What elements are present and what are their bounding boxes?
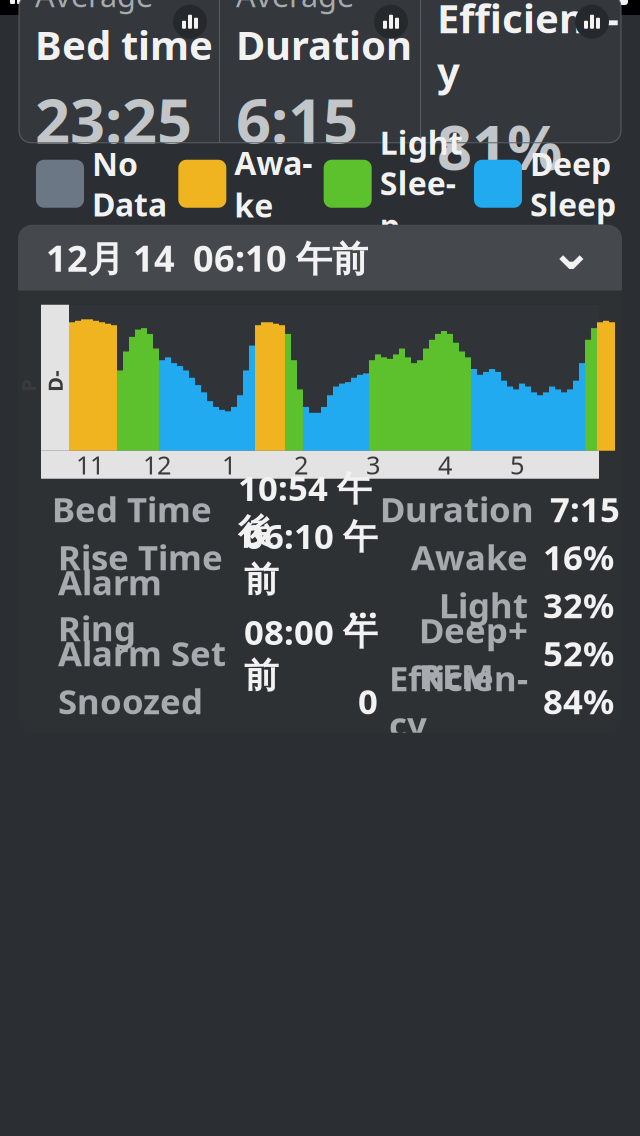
staticText: Bed Time (52, 486, 212, 532)
staticText: Snoozed (58, 678, 203, 724)
staticText: 99% (510, 0, 576, 17)
staticText: 32% (543, 582, 614, 628)
staticText: 3 (366, 448, 380, 481)
staticText: Duration (236, 18, 412, 71)
staticText: ➤ (446, 0, 467, 9)
staticText: 12月 14 06:10 午前 (46, 234, 368, 282)
staticText: Average (236, 0, 354, 16)
staticText: 16% (543, 534, 614, 580)
staticText: Light (439, 582, 528, 628)
staticText: SoftBank (50, 0, 194, 17)
staticText: 5 (510, 448, 524, 481)
staticText: 81% (437, 105, 562, 187)
staticText: Awake (411, 534, 528, 580)
staticText: Average (35, 0, 153, 16)
staticText: No (92, 142, 138, 185)
staticText: Efficiency (389, 655, 528, 747)
staticText: Efficiency (437, 0, 619, 97)
staticText: Bed time (35, 18, 213, 71)
staticText: Data (92, 183, 167, 225)
staticText: ⌄ (549, 220, 594, 281)
staticText: Sleep (380, 161, 456, 246)
staticText: Deep+REM (419, 607, 528, 699)
staticText: 2 (294, 448, 308, 481)
button[interactable]: Average (220, 0, 420, 143)
staticText: 08:00 午前 (244, 608, 378, 697)
staticText: Alarm Ring (58, 559, 162, 651)
staticText: ... (348, 582, 378, 628)
staticText: Rise Time (58, 534, 223, 580)
staticText: ✳ (231, 0, 253, 10)
staticText: 6:13 (316, 0, 382, 17)
staticText: 52% (543, 630, 614, 676)
button[interactable]: Average (421, 0, 621, 143)
staticText: Alarm Set (58, 630, 226, 676)
staticText: 4 (438, 448, 452, 481)
staticText: SLEEP DEPTH (41, 285, 69, 471)
staticText: 11 (76, 448, 104, 481)
staticText: 10:54 午後 (238, 464, 372, 553)
staticText: 6:15 (236, 79, 358, 160)
staticText: 0 (358, 678, 378, 724)
staticText: Deep (530, 142, 611, 185)
staticText: 7:15 (550, 486, 620, 532)
staticText: 1 (222, 448, 236, 481)
staticText: Duration (380, 486, 534, 532)
staticText: Awake (234, 141, 312, 226)
button[interactable]: 12月 14 06:10 午前 (18, 225, 622, 291)
staticText: Light (380, 121, 463, 163)
staticText: ✦ (479, 0, 500, 9)
staticText: 23:25 (35, 79, 192, 160)
button[interactable]: Average (19, 0, 219, 143)
staticText: Sleep (530, 183, 616, 225)
staticText: 84% (543, 678, 614, 724)
staticText: 06:10 午前 (244, 512, 378, 601)
staticText: 12 (143, 448, 171, 481)
